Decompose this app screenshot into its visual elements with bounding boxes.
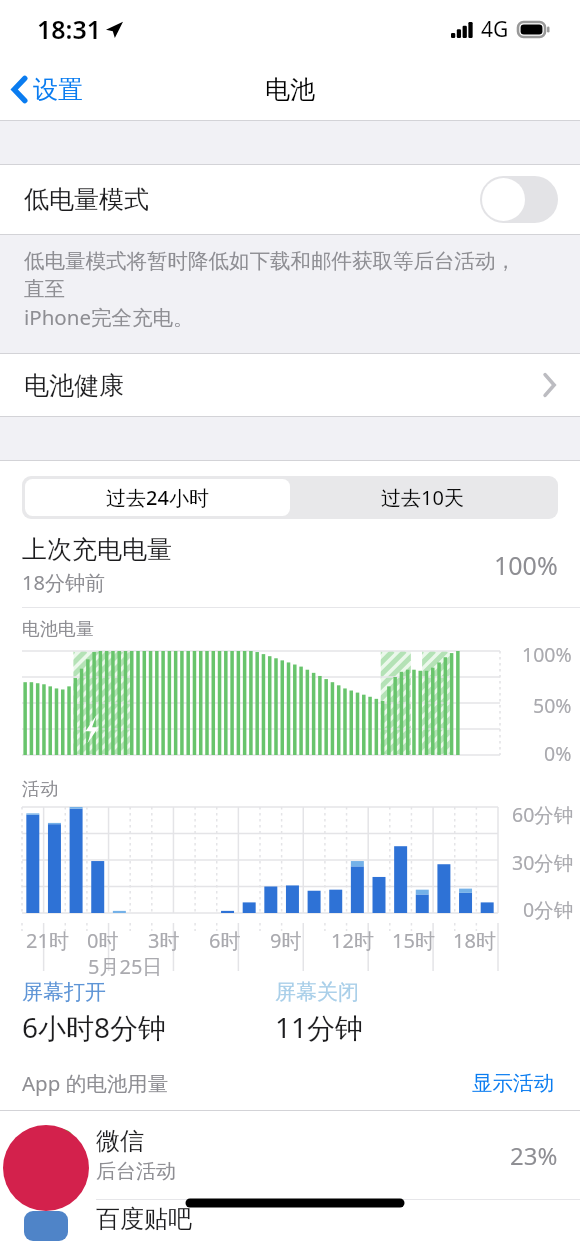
button[interactable]: 过去24小时 (25, 479, 290, 516)
staticText: 0分钟 (523, 896, 574, 923)
staticText: 23% (510, 1139, 558, 1172)
button[interactable]: 显示活动 (468, 1066, 558, 1100)
staticText: 活动 (22, 778, 58, 801)
staticText: 30分钟 (512, 849, 574, 876)
staticText: 微信 (96, 1126, 144, 1156)
staticText: App 的电池用量 (22, 1069, 169, 1097)
staticText: 过去10天 (381, 484, 464, 511)
staticText: 15时 (392, 927, 435, 954)
staticText: 低电量模式 (24, 184, 149, 215)
staticText: 屏幕打开 (22, 979, 106, 1005)
staticText: 上次充电电量 (22, 534, 172, 565)
staticText: 50% (533, 692, 572, 719)
staticText: 电池 (265, 74, 315, 105)
button[interactable]: 低电量模式 开关，已关闭 (480, 176, 558, 223)
staticText: 3时 (148, 927, 180, 954)
button[interactable]: 低电量模式 (0, 165, 580, 234)
staticText: 过去24小时 (106, 484, 209, 511)
staticText: 21时 (26, 927, 69, 954)
staticText: 100% (494, 548, 558, 582)
staticText: 18时 (453, 927, 496, 954)
staticText: 设置 (33, 74, 83, 105)
button[interactable]: 过去10天 (290, 479, 555, 516)
staticText: 5月25日 (88, 953, 163, 977)
staticText: 100% (522, 641, 572, 668)
staticText: 6时 (209, 927, 241, 954)
staticText: 12时 (331, 927, 374, 954)
staticText: 4G (481, 15, 509, 44)
staticText: 低电量模式将暂时降低如下载和邮件获取等后台活动，直至 iPhone完全充电。 (24, 248, 530, 331)
staticText: 0% (544, 740, 572, 767)
staticText: 0时 (87, 927, 119, 954)
staticText: 18:31 (37, 12, 102, 46)
staticText: 显示活动 (472, 1070, 554, 1096)
staticText: 11分钟 (275, 1008, 364, 1046)
button[interactable]: 设置 (0, 66, 95, 113)
staticText: 电池电量 (22, 618, 94, 641)
staticText: 6小时8分钟 (22, 1008, 167, 1046)
staticText: 百度贴吧 (96, 1204, 192, 1234)
staticText: 18分钟前 (22, 569, 105, 596)
staticText: 电池健康 (24, 370, 124, 401)
button[interactable]: 微信 (0, 1111, 580, 1199)
button[interactable]: 电池健康 (0, 354, 580, 416)
button[interactable]: 百度贴吧 (0, 1200, 580, 1255)
staticText: 后台活动 (96, 1159, 176, 1184)
staticText: 60分钟 (512, 801, 574, 828)
staticText: 屏幕关闭 (275, 979, 359, 1005)
staticText: 9时 (270, 927, 302, 954)
